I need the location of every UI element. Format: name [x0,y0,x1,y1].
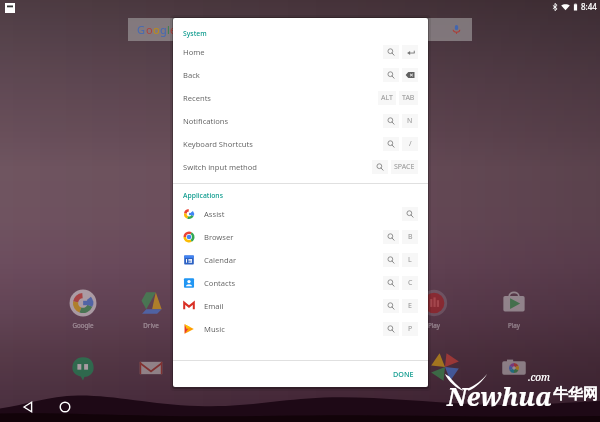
staticText: Assist [204,209,225,219]
staticText: Home [183,47,205,57]
button[interactable]: Hangouts [69,354,97,396]
button[interactable]: Drive [137,289,165,331]
button[interactable]: Keyboard Shortcuts [173,132,428,155]
staticText: o [146,22,153,37]
staticText: l [167,22,170,37]
button[interactable]: Back [173,63,428,86]
staticText: C [408,278,413,288]
button[interactable]: Play Music [420,289,448,331]
staticText: N [407,116,413,126]
staticText: System [183,29,207,38]
staticText: Newhua [447,379,552,413]
staticText: Browser [204,232,234,242]
staticText: Google [69,321,97,329]
button[interactable]: Music [173,317,428,340]
staticText: Back [183,70,200,80]
button[interactable]: Camera [500,354,528,396]
staticText: .com [528,370,551,384]
staticText: Contacts [204,278,236,288]
staticText: o [153,22,160,37]
button[interactable]: Browser [173,225,428,248]
staticText: Drive [137,321,165,329]
button[interactable]: Play Store [500,289,528,331]
staticText: G [137,22,146,37]
button[interactable]: Recents [173,86,428,109]
staticText: 牛华网 [553,385,598,404]
button[interactable]: Calendar [173,248,428,271]
button[interactable]: Email [173,294,428,317]
staticText: Switch input method [183,162,257,172]
staticText: ALT [381,93,393,103]
staticText: Music [204,324,225,334]
button[interactable]: DONE [387,365,420,383]
staticText: Email [204,301,224,311]
button[interactable]: Google [69,289,97,331]
staticText: e [170,22,177,37]
button[interactable]: Switch input method [173,155,428,178]
button[interactable]: Notifications [173,109,428,132]
staticText: Play Store [500,321,528,329]
staticText: DONE [393,369,414,379]
button[interactable]: Back [18,397,38,417]
staticText: P [408,324,413,334]
staticText: Play Music [420,321,448,329]
staticText: B [408,232,413,242]
button[interactable]: Google search [128,18,472,41]
button[interactable]: Home [173,40,428,63]
button[interactable]: Home [55,397,75,417]
staticText: / [409,139,412,149]
button[interactable]: Photos [430,352,460,396]
staticText: Notifications [183,116,229,126]
staticText: Keyboard Shortcuts [183,139,253,149]
staticText: Calendar [204,255,237,265]
button[interactable]: Assist [173,202,428,225]
button[interactable]: Gmail [137,354,165,396]
staticText: Recents [183,93,212,103]
button[interactable]: Contacts [173,271,428,294]
staticText: SPACE [394,162,415,172]
staticText: Applications [183,191,223,200]
staticText: 8:44 [581,1,597,12]
staticText: g [160,22,167,37]
staticText: TAB [402,93,415,103]
staticText: L [408,255,412,265]
staticText: E [408,301,412,311]
